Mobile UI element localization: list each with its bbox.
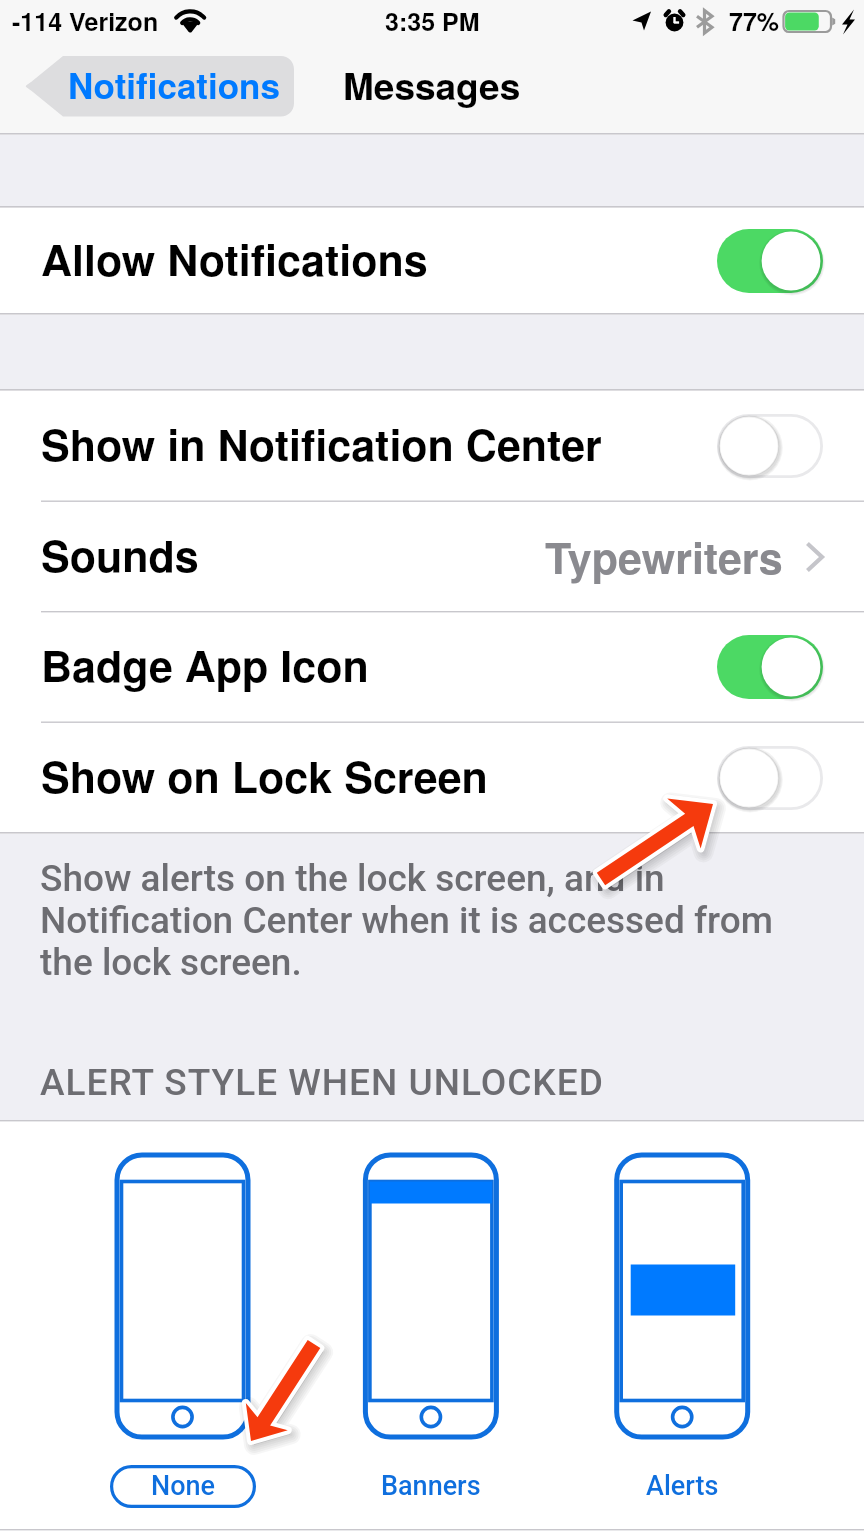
button[interactable]: Alerts — [609, 1465, 755, 1508]
staticText: Sounds — [41, 524, 199, 586]
staticText: Messages — [343, 58, 521, 111]
staticText: Show in Notification Center — [41, 413, 602, 475]
button[interactable]: Sounds — [0, 502, 864, 611]
staticText: Typewriters — [545, 526, 783, 588]
button[interactable]: None — [110, 1465, 256, 1508]
staticText: -114 Verizon — [12, 3, 159, 39]
button[interactable]: Banners — [358, 1465, 504, 1508]
staticText: Notifications — [68, 60, 280, 110]
staticText: Show on Lock Screen — [41, 745, 488, 807]
staticText: 3:35 PM — [385, 3, 480, 39]
staticText: Allow Notifications — [41, 228, 428, 290]
staticText: Alerts — [646, 1470, 719, 1502]
button[interactable]: Show in Notification Center — [0, 391, 864, 500]
staticText: Show alerts on the lock screen, and in N… — [40, 857, 773, 984]
button[interactable]: Back to Notifications — [26, 56, 294, 117]
staticText: Banners — [381, 1470, 481, 1502]
staticText: None — [151, 1470, 215, 1502]
button[interactable]: Allow Notifications — [0, 208, 864, 313]
staticText: ALERT STYLE WHEN UNLOCKED — [40, 1061, 604, 1104]
staticText: Badge App Icon — [41, 634, 369, 696]
button[interactable]: Badge App Icon — [0, 612, 864, 721]
staticText: 77% — [729, 3, 780, 39]
button[interactable]: Show on Lock Screen — [0, 723, 864, 832]
